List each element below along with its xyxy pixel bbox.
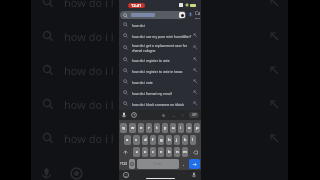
button[interactable]: Voice search xyxy=(188,12,193,17)
button[interactable]: b xyxy=(166,147,172,157)
button[interactable]: v xyxy=(158,147,164,157)
staticText: y xyxy=(164,125,167,131)
button[interactable]: f xyxy=(150,135,156,145)
staticText: f xyxy=(152,137,154,143)
button[interactable]: x xyxy=(142,147,148,157)
button[interactable]: e xyxy=(138,123,144,133)
staticText: how do i use my pure mini humidifier? xyxy=(132,34,193,38)
button[interactable]: Settings xyxy=(161,113,166,118)
staticText: e xyxy=(140,125,143,131)
button[interactable]: ?123 xyxy=(119,159,128,169)
staticText: how do i l xyxy=(64,131,114,146)
staticText: i xyxy=(180,125,182,131)
staticText: p xyxy=(196,125,199,131)
staticText: how do i l xyxy=(64,97,114,112)
staticText: GIF xyxy=(192,113,197,117)
button[interactable]: p xyxy=(194,123,200,133)
staticText: how do i register to vote xyxy=(132,58,193,62)
staticText: o xyxy=(188,125,191,131)
button[interactable]: s xyxy=(133,135,140,145)
button[interactable]: Google Lens xyxy=(69,166,84,180)
button[interactable]: Voice input xyxy=(191,172,197,178)
staticText: how do i vote xyxy=(132,80,193,84)
staticText: how do i block someone on tiktok xyxy=(132,102,193,106)
button[interactable]: how do i l xyxy=(31,87,288,121)
staticText: how do i l xyxy=(64,29,114,44)
button[interactable]: how do i get a replacement case for chan… xyxy=(119,41,201,54)
staticText: / xyxy=(182,113,184,118)
staticText: m xyxy=(183,149,187,155)
staticText: n xyxy=(176,149,179,155)
staticText: how do i register to vote in texas xyxy=(132,69,193,73)
staticText: s xyxy=(135,137,138,143)
button[interactable]: r xyxy=(146,123,152,133)
button[interactable]: how do i l xyxy=(31,0,288,19)
button[interactable]: how do i xyxy=(119,19,201,30)
button[interactable]: d xyxy=(142,135,148,145)
staticText: l xyxy=(192,137,194,143)
staticText: hindi xyxy=(154,162,162,166)
button[interactable]: how do i block someone on tiktok xyxy=(119,98,201,109)
button[interactable]: i xyxy=(178,123,184,133)
staticText: h xyxy=(168,137,171,143)
button[interactable]: how do i register to vote xyxy=(119,54,201,65)
staticText: how do i xyxy=(132,23,198,27)
staticText: ?123 xyxy=(120,162,127,166)
button[interactable]: . xyxy=(180,159,188,169)
staticText: g xyxy=(160,137,163,143)
staticText: v xyxy=(160,149,163,155)
staticText: t xyxy=(156,125,158,131)
button[interactable]: k xyxy=(182,135,188,145)
staticText: w xyxy=(131,125,135,131)
button[interactable]: a xyxy=(124,135,131,145)
staticText: x xyxy=(144,149,147,155)
staticText: q xyxy=(122,125,125,131)
button[interactable]: Cancel xyxy=(195,10,201,19)
button[interactable]: how do i l xyxy=(31,19,288,53)
button[interactable]: q xyxy=(120,123,127,133)
button[interactable]: Emoji xyxy=(123,172,129,178)
button[interactable]: u xyxy=(170,123,176,133)
staticText: — xyxy=(172,113,176,118)
button[interactable]: t xyxy=(154,123,160,133)
button[interactable]: j xyxy=(174,135,180,145)
button[interactable]: Clipboard history xyxy=(131,112,137,118)
staticText: k xyxy=(184,137,187,143)
button[interactable]: Shift xyxy=(120,147,131,157)
button[interactable]: Google Lens xyxy=(120,11,186,19)
button[interactable]: how do i format my email xyxy=(119,87,201,98)
button[interactable]: GIF xyxy=(189,112,199,118)
staticText: r xyxy=(148,125,150,131)
button[interactable]: Google Lens xyxy=(179,12,185,18)
staticText: . xyxy=(183,161,185,167)
button[interactable]: z xyxy=(133,147,140,157)
button[interactable]: w xyxy=(129,123,136,133)
button[interactable]: how do i register to vote in texas xyxy=(119,65,201,76)
staticText: 12:41 xyxy=(131,3,142,8)
button[interactable]: Voice search xyxy=(40,167,53,180)
button[interactable]: how do i l xyxy=(31,53,288,87)
button[interactable]: m xyxy=(182,147,188,157)
staticText: d xyxy=(144,137,147,143)
button[interactable]: Backspace xyxy=(190,147,200,157)
staticText: c xyxy=(152,149,155,155)
button[interactable]: Space xyxy=(137,159,179,169)
staticText: how do i get a replacement case for chan… xyxy=(132,43,193,53)
button[interactable]: Emoji xyxy=(129,159,135,169)
staticText: a xyxy=(126,137,129,143)
staticText: j xyxy=(176,137,178,143)
button[interactable]: n xyxy=(174,147,180,157)
button[interactable]: h xyxy=(166,135,172,145)
button[interactable]: l xyxy=(190,135,196,145)
button[interactable]: g xyxy=(158,135,164,145)
button[interactable]: how do i use my pure mini humidifier? xyxy=(119,30,201,41)
staticText: u xyxy=(172,125,175,131)
button[interactable]: Search xyxy=(189,159,200,169)
button[interactable]: how do i vote xyxy=(119,76,201,87)
button[interactable]: y xyxy=(162,123,168,133)
button[interactable]: how do i l xyxy=(31,121,288,155)
staticText: how do i format my email xyxy=(132,91,193,95)
button[interactable]: c xyxy=(150,147,156,157)
button[interactable]: o xyxy=(186,123,192,133)
button[interactable]: Voice input xyxy=(121,112,127,118)
